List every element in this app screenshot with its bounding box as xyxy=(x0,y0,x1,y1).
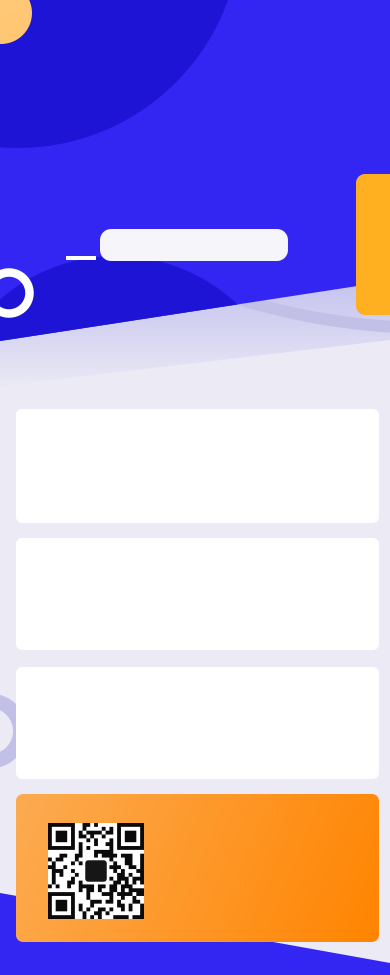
button[interactable] xyxy=(16,794,379,942)
button[interactable] xyxy=(100,229,288,261)
